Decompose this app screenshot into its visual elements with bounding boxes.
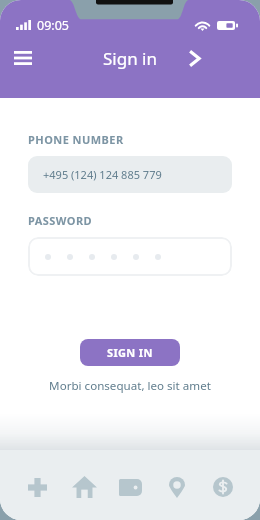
button[interactable] — [28, 237, 232, 276]
button[interactable]: Menu — [7, 42, 39, 74]
button[interactable]: +495 (124) 124 885 779 — [28, 156, 232, 193]
button[interactable]: Home — [64, 467, 104, 507]
button[interactable]: SIGN IN — [80, 339, 180, 366]
button[interactable]: Next — [178, 42, 210, 74]
staticText: PASSWORD — [28, 213, 93, 228]
staticText: Sign in — [103, 47, 157, 70]
button[interactable]: Location — [157, 467, 197, 507]
staticText: PHONE NUMBER — [28, 132, 124, 147]
button[interactable]: Morbi consequat, leo sit amet — [28, 378, 232, 394]
button[interactable]: Payments — [203, 467, 243, 507]
staticText: +495 (124) 124 885 779 — [43, 167, 162, 182]
staticText: 09:05 — [37, 17, 69, 34]
staticText: SIGN IN — [107, 345, 153, 360]
button[interactable]: Add — [17, 467, 57, 507]
button[interactable]: Wallet — [110, 467, 150, 507]
